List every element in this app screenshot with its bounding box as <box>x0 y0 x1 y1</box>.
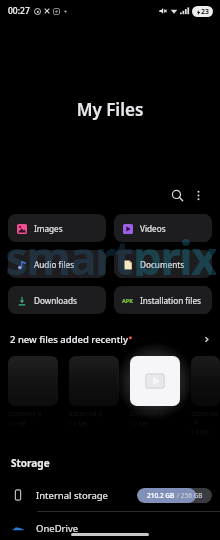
staticText: 20250104_0 <box>191 410 220 426</box>
staticText: 1.2 MB <box>191 428 209 435</box>
staticText: OneDrive <box>36 522 79 535</box>
staticText: Audio files <box>34 259 75 270</box>
staticText: 20250104_0 <box>130 410 164 418</box>
staticText: 210.2 GB <box>147 491 175 500</box>
button[interactable]: 20250104_0 <box>8 356 58 427</box>
button[interactable]: Images <box>8 214 106 242</box>
button[interactable]: 20250104_0 <box>69 356 119 427</box>
staticText: 1.2 MB <box>69 420 87 427</box>
staticText: 20250104_0 <box>69 410 103 418</box>
button[interactable]: Downloads <box>8 286 106 314</box>
staticText: 1.2 MB <box>8 420 26 427</box>
staticText: My Files <box>0 98 220 121</box>
staticText: 20250104_0 <box>8 410 42 418</box>
staticText: Images <box>34 223 63 234</box>
button[interactable]: Search <box>167 185 188 206</box>
staticText: Installation files <box>140 295 201 306</box>
staticText: Internal storage <box>36 489 108 502</box>
button[interactable]: APK <box>114 286 212 314</box>
button[interactable]: Documents <box>114 250 212 278</box>
staticText: 00:27 <box>8 5 30 17</box>
staticText: Downloads <box>34 295 77 306</box>
staticText: Storage <box>11 456 50 470</box>
staticText: Videos <box>140 223 166 234</box>
button[interactable]: 20250104_0 <box>191 356 220 435</box>
button[interactable]: OneDrive <box>0 512 220 540</box>
staticText: 23 <box>201 7 210 17</box>
button[interactable]: 2 new files added recently <box>0 329 220 349</box>
staticText: APK <box>122 297 133 304</box>
button[interactable]: 20250104_0 <box>130 356 180 427</box>
staticText: prix <box>133 226 216 276</box>
button[interactable]: Internal storage <box>0 479 220 511</box>
staticText: Documents <box>140 259 185 270</box>
staticText: smart <box>5 226 133 276</box>
button[interactable]: Videos <box>114 214 212 242</box>
button[interactable]: Audio files <box>8 250 106 278</box>
staticText: 1.2 MB <box>130 420 148 427</box>
staticText: 2 new files added recently <box>10 333 128 346</box>
staticText: / 256 GB <box>175 491 203 500</box>
button[interactable]: More options <box>188 185 209 206</box>
